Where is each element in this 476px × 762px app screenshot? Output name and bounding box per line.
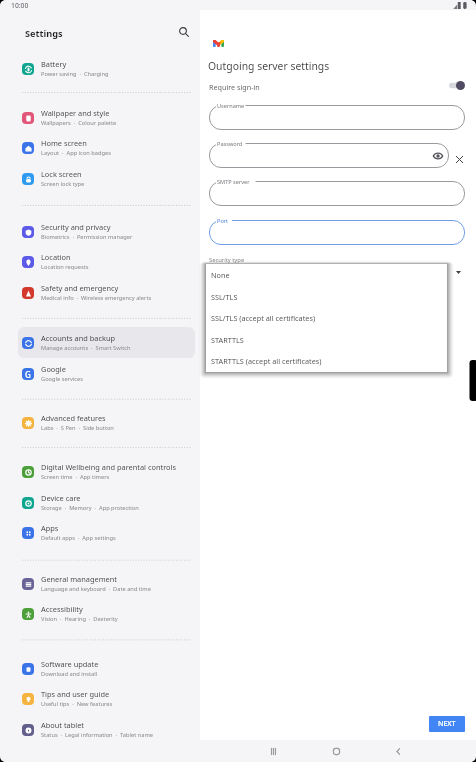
staticText: Download and install [41,670,98,678]
staticText: Wallpapers · Colour palette [41,119,117,127]
staticText: Password [217,140,243,148]
staticText: Google services [41,375,83,383]
staticText: Settings [25,27,63,40]
button[interactable]: Show password [431,149,444,162]
button[interactable]: General management [18,568,195,599]
staticText: Layout · App icon badges [41,149,111,157]
button[interactable]: Back [387,740,409,762]
staticText: Screen time · App timers [41,473,110,481]
staticText: Tips and user guide [41,689,110,699]
button[interactable]: SSL/TLS (accept all certificates) [206,307,447,329]
staticText: Security and privacy [41,222,111,232]
staticText: Lock screen [41,169,82,179]
button[interactable]: Battery [18,53,195,84]
button[interactable]: Wallpaper and style [18,102,195,133]
button[interactable]: Require sign-in [448,79,466,92]
button[interactable]: Recents [262,740,284,762]
staticText: Require sign-in [209,82,260,92]
staticText: NEXT [438,719,456,729]
staticText: Storage · Memory · App protection [41,504,139,512]
staticText: SMTP server [217,178,250,186]
button[interactable]: STARTTLS [206,329,447,351]
staticText: STARTTLS (accept all certificates) [211,356,322,366]
button[interactable]: Home [325,740,347,762]
button[interactable]: SSL/TLS [206,286,447,308]
staticText: Accessibility [41,604,83,614]
button[interactable]: Location [18,246,195,277]
button[interactable]: Apps [18,517,195,548]
staticText: Accounts and backup [41,333,116,343]
button[interactable]: Clear [452,152,466,166]
button[interactable]: Safety and emergency [18,277,195,308]
staticText: Username [217,102,245,110]
button[interactable]: Accounts and backup [18,327,195,358]
staticText: Software update [41,659,99,669]
button[interactable]: About tablet [18,714,195,745]
button[interactable]: NEXT [429,716,465,732]
staticText: Apps [41,523,59,533]
staticText: STARTTLS [211,335,244,345]
staticText: Safety and emergency [41,283,119,293]
staticText: Digital Wellbeing and parental controls [41,462,176,472]
staticText: Home screen [41,138,87,148]
staticText: Useful tips · New features [41,700,113,708]
button[interactable]: G [18,358,195,389]
staticText: Device care [41,493,81,503]
staticText: SSL/TLS [211,292,238,302]
staticText: Medical info · Wireless emergency alerts [41,294,152,302]
button[interactable]: Digital Wellbeing and parental controls [18,456,195,487]
staticText: G [25,369,31,380]
staticText: Language and keyboard · Date and time [41,585,151,593]
button[interactable]: Accessibility [18,598,195,629]
staticText: Security type [209,256,245,264]
staticText: Default apps · App settings [41,534,116,542]
staticText: Power saving · Charging [41,70,109,78]
staticText: 10:00 [11,1,29,10]
staticText: SSL/TLS (accept all certificates) [211,313,316,323]
staticText: Battery [41,59,67,69]
staticText: Manage accounts · Smart Switch [41,344,131,352]
button[interactable]: Tips and user guide [18,683,195,714]
button[interactable]: Security and privacy [18,216,195,247]
staticText: Google [41,364,66,374]
button[interactable]: Search [172,20,196,44]
staticText: Status · Legal information · Tablet name [41,731,153,739]
staticText: Vision · Hearing · Dexterity [41,615,118,623]
button[interactable]: Software update [18,653,195,684]
staticText: Location requests [41,263,89,271]
staticText: Wallpaper and style [41,108,110,118]
staticText: Outgoing server settings [208,59,330,73]
button[interactable]: STARTTLS (accept all certificates) [206,350,447,372]
staticText: Advanced features [41,413,106,423]
staticText: General management [41,574,117,584]
button[interactable]: Device care [18,487,195,518]
staticText: Screen lock type [41,180,85,188]
staticText: Location [41,252,71,262]
button[interactable]: Home screen [18,132,195,163]
button[interactable]: Advanced features [18,407,195,438]
staticText: Port [217,217,229,225]
staticText: None [211,270,230,280]
button[interactable]: Lock screen [18,163,195,194]
staticText: Biometrics · Permission manager [41,233,133,241]
staticText: About tablet [41,720,84,730]
staticText: Labs · S Pen · Side button [41,424,114,432]
button[interactable]: None [206,264,447,286]
